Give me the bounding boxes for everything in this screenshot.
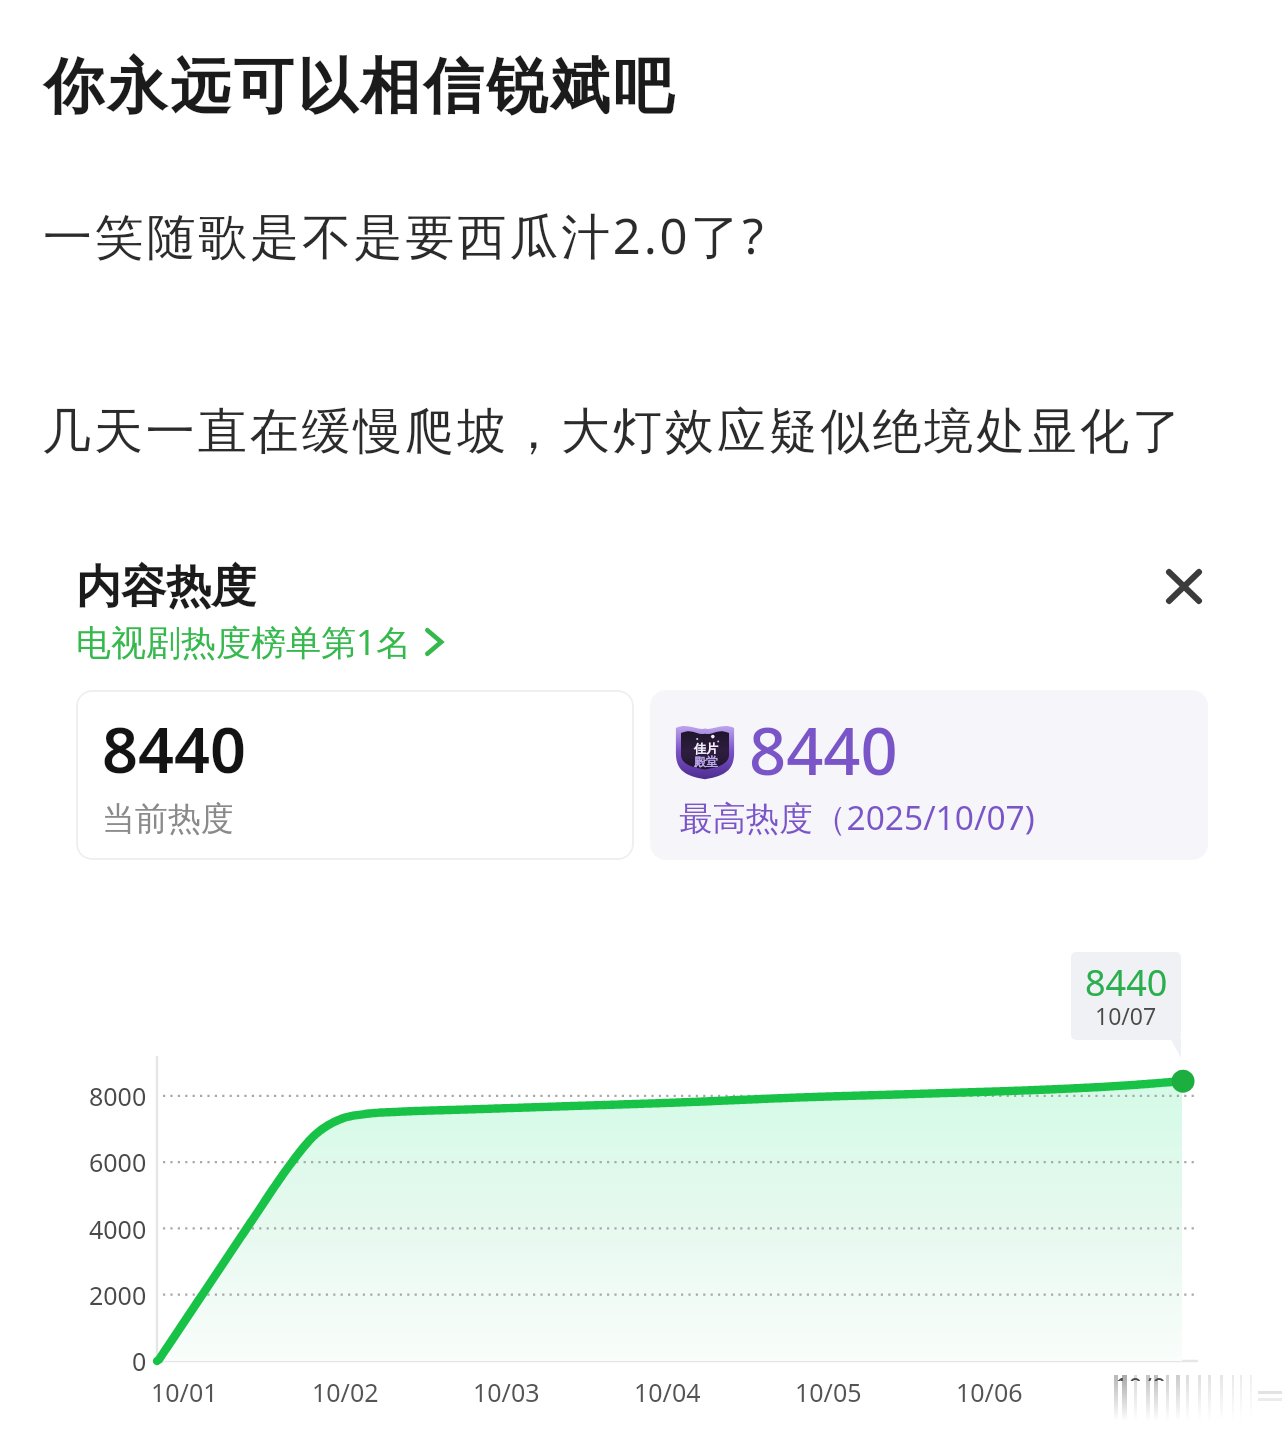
staticText: 4000 xyxy=(89,1212,147,1246)
staticText: 佳片 xyxy=(694,741,718,756)
staticText: 6000 xyxy=(89,1145,147,1179)
staticText: 10/07 xyxy=(1114,1373,1180,1381)
staticText: 当前热度 xyxy=(102,798,234,840)
staticText: 10/03 xyxy=(473,1375,540,1409)
staticText: 8440 xyxy=(102,706,247,792)
button[interactable]: Close xyxy=(1150,552,1218,620)
staticText: 电视剧热度榜单第1名 xyxy=(76,618,412,666)
staticText: 0 xyxy=(132,1344,147,1378)
staticText: 殿堂 xyxy=(694,754,718,769)
button[interactable]: 佳片 xyxy=(650,690,1208,860)
staticText: 8440 xyxy=(749,706,898,795)
staticText: 内容热度 xyxy=(76,559,256,616)
staticText: 10/05 xyxy=(795,1375,862,1409)
staticText: 8440 xyxy=(1085,958,1168,1007)
staticText: 最高热度（2025/10/07) xyxy=(679,794,1035,840)
staticText: 10/01 xyxy=(151,1375,218,1409)
staticText: 10/06 xyxy=(956,1375,1023,1409)
staticText: 2000 xyxy=(89,1278,147,1312)
staticText: 一笑随歌是不是要西瓜汁2.0了? xyxy=(43,202,767,269)
staticText: 10/02 xyxy=(312,1375,379,1409)
staticText: 你永远可以相信锐斌吧 xyxy=(42,49,675,125)
button[interactable]: 电视剧热度榜单第1名 xyxy=(76,618,443,666)
button[interactable]: 8440 xyxy=(76,690,634,860)
staticText: 几天一直在缓慢爬坡，大灯效应疑似绝境处显化了 xyxy=(42,401,1184,463)
staticText: 10/07 xyxy=(1095,1000,1157,1031)
staticText: 10/04 xyxy=(634,1375,701,1409)
staticText: 8000 xyxy=(89,1079,147,1113)
